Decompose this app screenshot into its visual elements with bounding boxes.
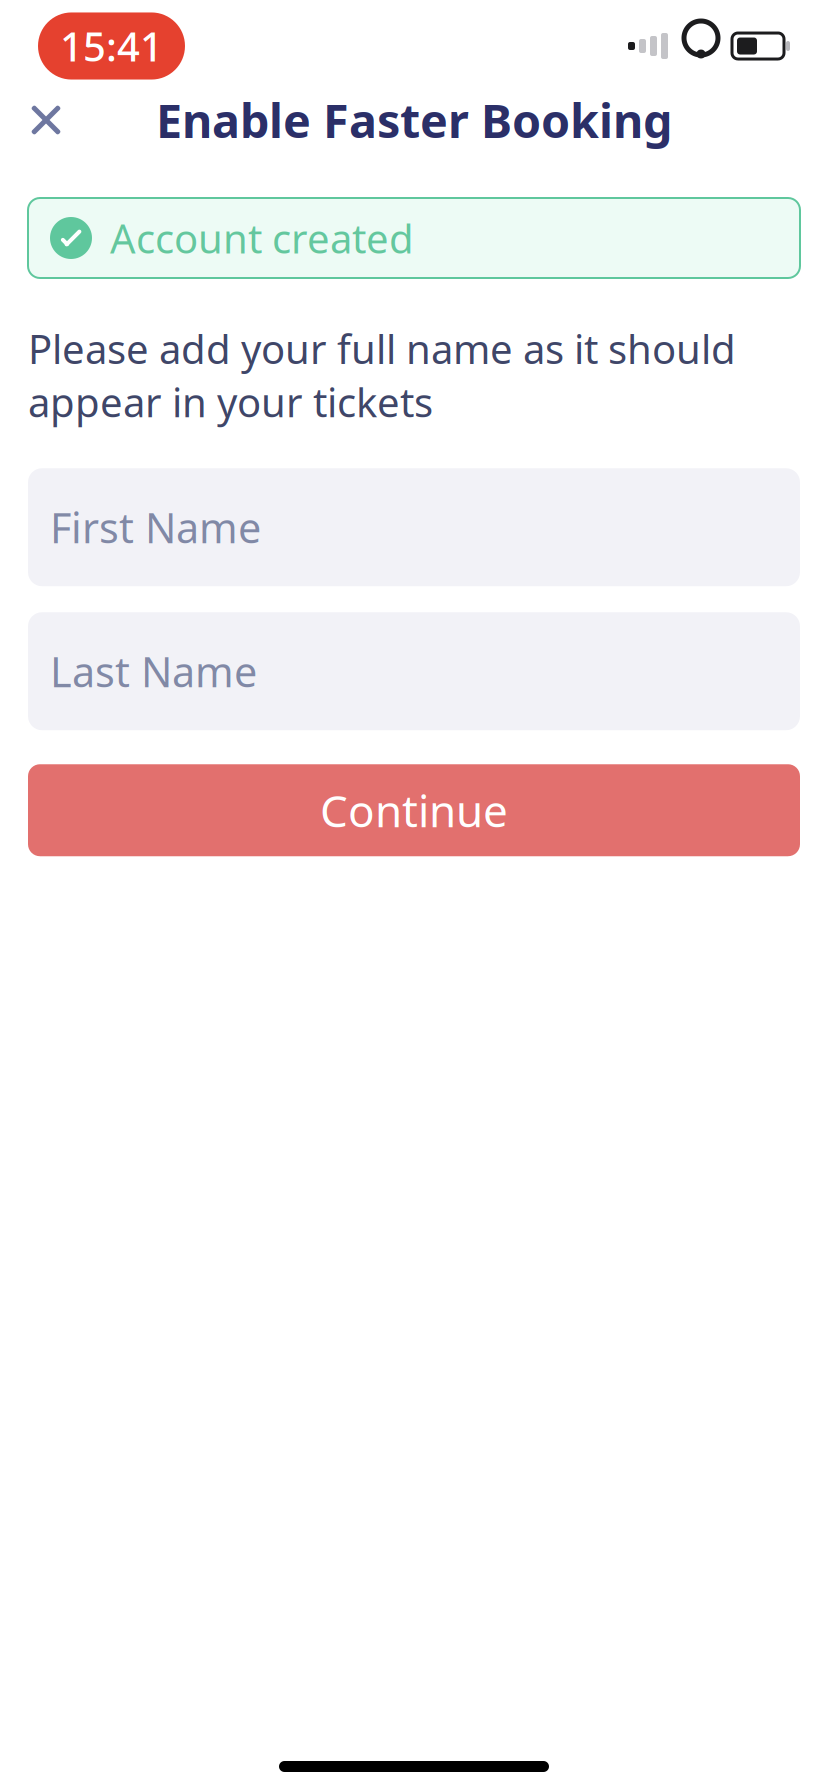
staticText: Please add your full name as it should a… [28,322,736,428]
button[interactable]: First Name [28,468,800,586]
staticText: Account created [110,211,414,264]
staticText: Enable Faster Booking [156,89,672,151]
staticText: Continue [320,781,508,839]
staticText: Last Name [50,644,257,699]
staticText: 15:41 [60,19,163,72]
button[interactable]: Continue [28,764,800,856]
button[interactable]: Last Name [28,612,800,730]
button[interactable]: Close [10,84,82,156]
staticText: First Name [50,500,261,555]
